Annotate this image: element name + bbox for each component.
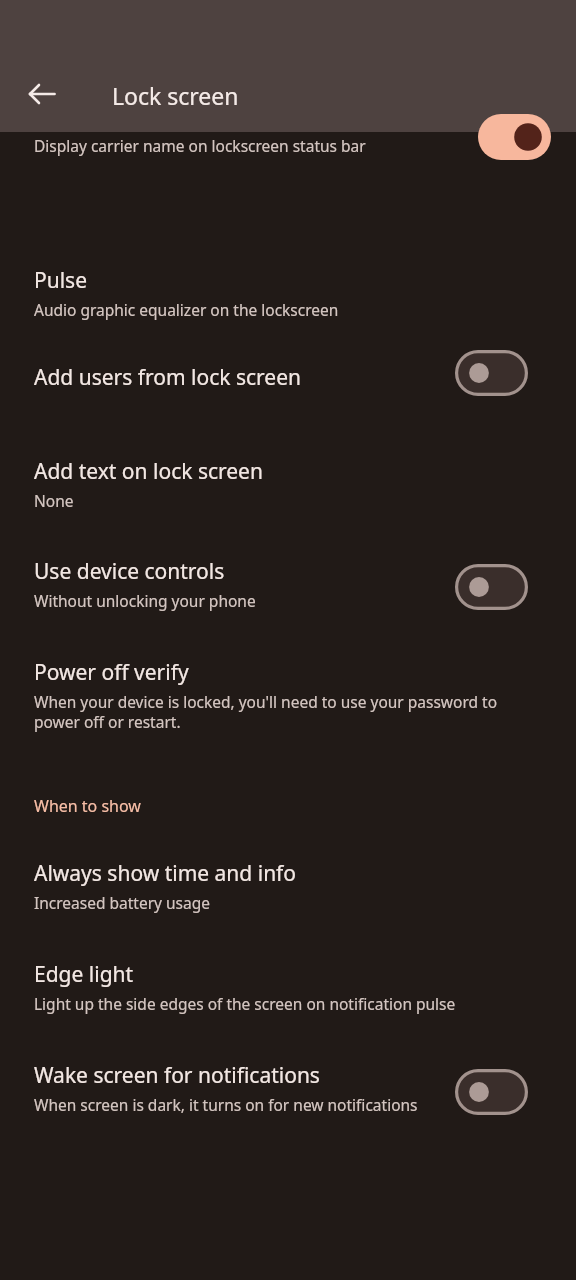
staticText: Audio graphic equalizer on the lockscree… (34, 299, 339, 320)
button[interactable]: Always show time and info (0, 817, 576, 913)
staticText: Display carrier name on lockscreen statu… (34, 135, 366, 156)
staticText: Power off verify (34, 658, 189, 687)
button[interactable]: Display carrier name on lockscreen statu… (0, 132, 576, 156)
staticText: Always show time and info (34, 859, 297, 888)
staticText: Wake screen for notifications (34, 1061, 320, 1090)
button[interactable]: Wake screen for notifications toggle (455, 1069, 528, 1115)
button[interactable]: Add text on lock screen (0, 409, 576, 511)
staticText: When your device is locked, you'll need … (34, 691, 534, 733)
staticText: Use device controls (34, 557, 225, 586)
staticText: Add users from lock screen (34, 363, 301, 392)
button[interactable]: Add users from lock screen (0, 320, 576, 409)
button[interactable]: Pulse (0, 224, 576, 320)
staticText: Edge light (34, 960, 134, 989)
button[interactable]: Edge light (0, 913, 576, 1014)
staticText: Without unlocking your phone (34, 590, 256, 611)
button[interactable]: Add users from lock screen toggle (455, 350, 528, 396)
staticText: Add text on lock screen (34, 457, 263, 486)
staticText: Increased battery usage (34, 892, 211, 913)
button[interactable]: Use device controls (0, 511, 576, 611)
staticText: Pulse (34, 266, 88, 295)
button[interactable]: Use device controls toggle (455, 564, 528, 610)
staticText: Lock screen (112, 80, 239, 111)
staticText: When to show (34, 795, 141, 817)
button[interactable]: Display carrier name toggle (478, 114, 551, 160)
staticText: When screen is dark, it turns on for new… (34, 1094, 418, 1115)
staticText: Light up the side edges of the screen on… (34, 993, 456, 1014)
button[interactable]: Power off verify (0, 611, 576, 733)
button[interactable]: Wake screen for notifications (0, 1014, 576, 1115)
button[interactable]: Back (14, 66, 70, 122)
staticText: None (34, 490, 74, 511)
